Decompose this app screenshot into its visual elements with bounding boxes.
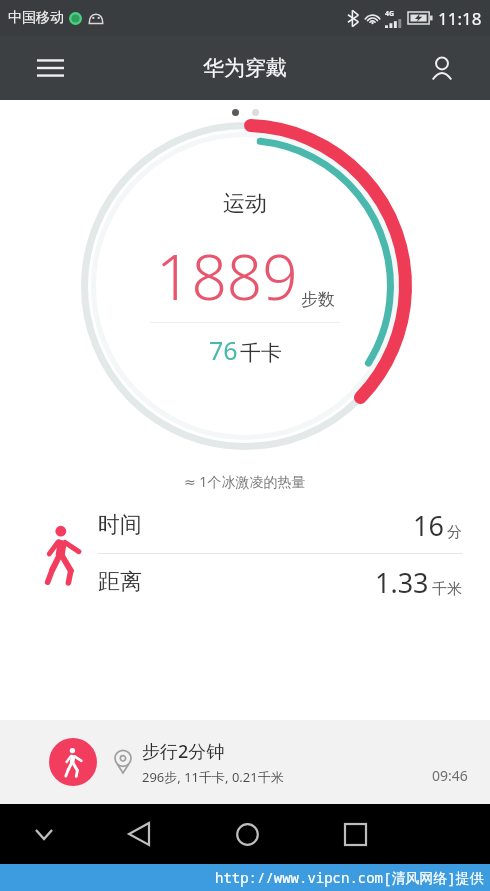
staticText: 距离	[98, 568, 142, 596]
staticText: 分	[447, 523, 462, 542]
staticText: 步数	[301, 289, 335, 310]
staticText: 中国移动	[8, 9, 64, 27]
staticText: 1889	[156, 234, 298, 318]
button[interactable]: Hide keyboard	[24, 814, 64, 854]
staticText: 时间	[98, 511, 142, 539]
staticText: 11:18	[438, 7, 482, 30]
staticText: 09:46	[432, 766, 468, 785]
button[interactable]: 步行2分钟	[0, 720, 490, 804]
staticText: 76	[209, 333, 238, 367]
staticText: 运动	[223, 190, 267, 218]
staticText: 步行2分钟	[142, 739, 225, 764]
staticText: 华为穿戴	[203, 55, 287, 81]
staticText: 4G	[385, 9, 395, 19]
button[interactable]: Back	[116, 811, 162, 857]
button[interactable]: 距离	[98, 554, 462, 610]
button[interactable]: Profile	[420, 46, 464, 90]
button[interactable]: 时间	[98, 497, 462, 553]
button[interactable]: Recent apps	[332, 811, 378, 857]
staticText: 千卡	[240, 340, 282, 366]
staticText: ≈ 1个冰激凌的热量	[184, 472, 306, 491]
staticText: 16	[413, 507, 444, 544]
button[interactable]: Menu	[28, 46, 72, 90]
staticText: 1.33	[375, 564, 429, 601]
staticText: 千米	[432, 580, 462, 599]
staticText: http://www.vipcn.com[清风网络]提供	[215, 868, 484, 887]
staticText: 296步, 11千卡, 0.21千米	[142, 768, 284, 786]
button[interactable]: Home	[224, 811, 270, 857]
